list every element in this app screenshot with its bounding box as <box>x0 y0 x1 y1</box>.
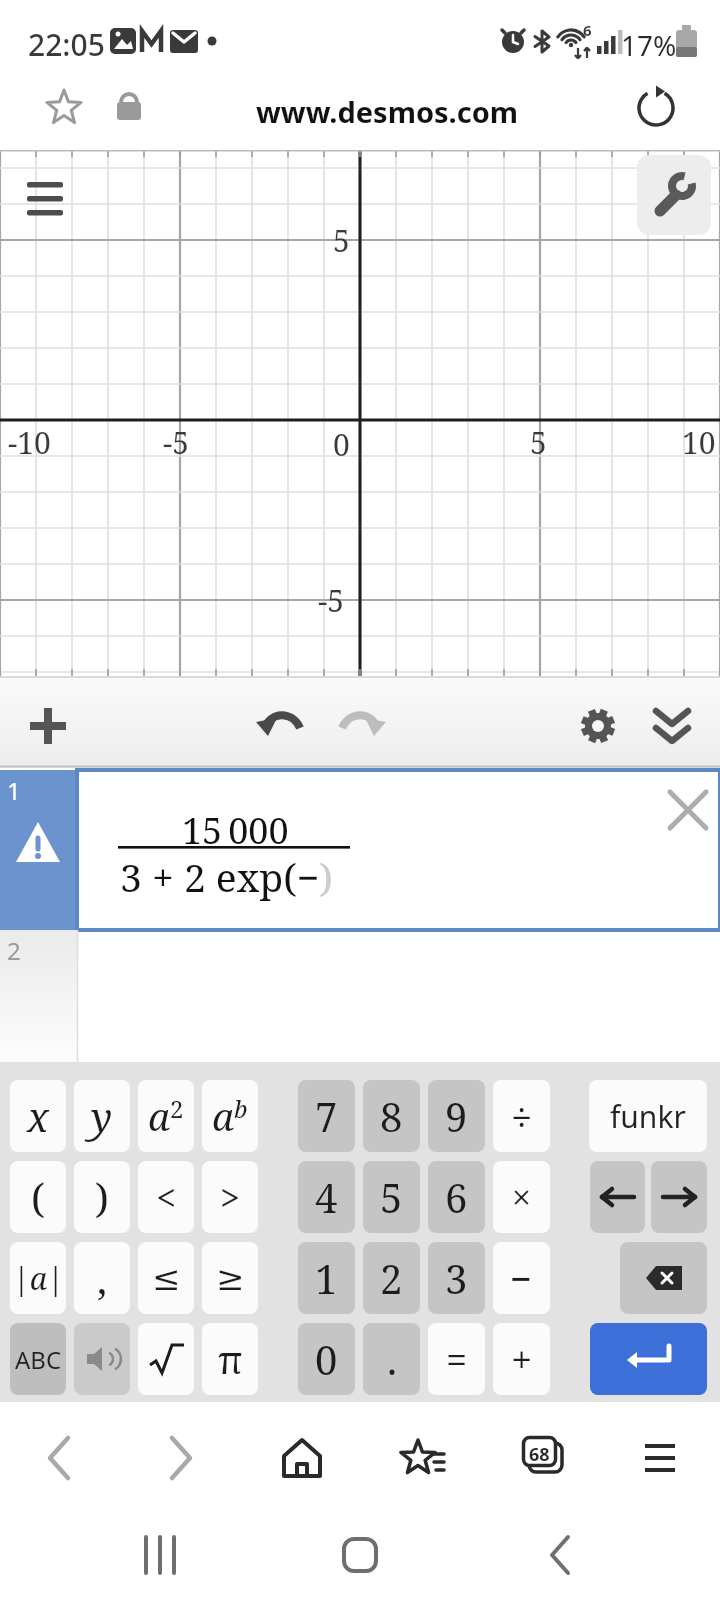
button[interactable]: 4 <box>298 1161 355 1233</box>
staticText: x <box>27 1089 49 1143</box>
staticText: 15 000 <box>182 806 289 855</box>
button[interactable]: . <box>363 1323 420 1395</box>
button[interactable]: 2 <box>363 1242 420 1314</box>
staticText: 2 <box>380 1251 403 1305</box>
staticText: 9 <box>445 1089 468 1143</box>
staticText: -5 <box>163 422 190 463</box>
staticText: ≤ <box>152 1258 181 1298</box>
button[interactable]: 8 <box>363 1080 420 1152</box>
button[interactable]: funkr <box>589 1080 707 1152</box>
button[interactable] <box>632 84 680 132</box>
button[interactable] <box>664 786 712 834</box>
button[interactable] <box>644 698 700 754</box>
button[interactable]: 7 <box>298 1080 355 1152</box>
staticText: > <box>220 1173 241 1222</box>
button[interactable]: ≥ <box>202 1242 258 1314</box>
staticText: 1 <box>315 1251 338 1305</box>
button[interactable] <box>0 770 77 930</box>
staticText: 1 <box>7 774 21 807</box>
button[interactable]: 5 <box>363 1161 420 1233</box>
staticText: www.desmos.com <box>256 92 519 131</box>
staticText: 3 <box>445 1251 468 1305</box>
button[interactable]: a2 <box>138 1080 194 1152</box>
button[interactable]: |a| <box>10 1242 66 1314</box>
button[interactable] <box>16 170 76 230</box>
button[interactable]: ) <box>74 1161 130 1233</box>
button[interactable] <box>0 930 77 1062</box>
button[interactable]: 1 <box>298 1242 355 1314</box>
staticText: ABC <box>15 1343 62 1376</box>
button[interactable] <box>590 1323 707 1395</box>
button[interactable]: < <box>138 1161 194 1233</box>
button[interactable] <box>630 1430 690 1486</box>
staticText: 22:05 <box>28 24 105 65</box>
staticText: × <box>512 1174 532 1220</box>
staticText: 3 + 2 exp(−) <box>120 850 333 903</box>
button[interactable] <box>150 1430 210 1486</box>
button[interactable] <box>570 698 626 754</box>
button[interactable] <box>20 698 76 754</box>
button[interactable]: 6 <box>428 1161 485 1233</box>
staticText: 68 <box>529 1442 550 1467</box>
staticText: -10 <box>8 422 51 463</box>
staticText: . <box>387 1332 397 1386</box>
button[interactable]: ÷ <box>493 1080 550 1152</box>
staticText: 4 <box>315 1170 338 1224</box>
button[interactable]: > <box>202 1161 258 1233</box>
button[interactable] <box>74 1323 130 1395</box>
button[interactable] <box>272 1430 332 1486</box>
button[interactable]: 68 <box>508 1430 568 1486</box>
button[interactable] <box>77 930 720 1062</box>
button[interactable]: + <box>493 1323 550 1395</box>
button[interactable] <box>130 1525 190 1585</box>
button[interactable] <box>77 770 720 930</box>
button[interactable]: , <box>74 1242 130 1314</box>
button[interactable]: 3 <box>428 1242 485 1314</box>
staticText: y <box>91 1089 113 1143</box>
staticText: π <box>218 1333 243 1385</box>
staticText: 6 <box>583 20 592 40</box>
button[interactable]: y <box>74 1080 130 1152</box>
button[interactable]: π <box>202 1323 258 1395</box>
staticText: 0 <box>333 424 350 465</box>
button[interactable] <box>651 1161 707 1233</box>
staticText: ÷ <box>511 1090 533 1142</box>
button[interactable]: 9 <box>428 1080 485 1152</box>
button[interactable]: × <box>493 1161 550 1233</box>
staticText: a2 <box>148 1090 184 1142</box>
staticText: < <box>156 1173 177 1222</box>
staticText: + <box>511 1333 533 1385</box>
button[interactable] <box>590 1161 645 1233</box>
staticText: 0 <box>315 1332 338 1386</box>
button[interactable] <box>252 698 312 754</box>
staticText: 7 <box>315 1089 338 1143</box>
button[interactable]: x <box>10 1080 66 1152</box>
staticText: = <box>446 1333 468 1385</box>
button[interactable] <box>530 1525 590 1585</box>
staticText: ) <box>95 1170 109 1224</box>
button[interactable]: ( <box>10 1161 66 1233</box>
staticText: |a| <box>13 1258 64 1299</box>
staticText: ( <box>31 1170 45 1224</box>
button[interactable] <box>138 1323 194 1395</box>
staticText: 6 <box>445 1170 468 1224</box>
button[interactable] <box>30 1430 90 1486</box>
button[interactable] <box>330 1525 390 1585</box>
button[interactable]: ABC <box>10 1323 66 1395</box>
staticText: 17% <box>621 26 677 64</box>
staticText: , <box>97 1251 107 1305</box>
button[interactable]: − <box>493 1242 550 1314</box>
button[interactable] <box>40 84 88 132</box>
button[interactable]: = <box>428 1323 485 1395</box>
staticText: 5 <box>380 1170 403 1224</box>
staticText: − <box>510 1252 533 1304</box>
staticText: ≥ <box>216 1258 245 1298</box>
button[interactable]: ab <box>202 1080 258 1152</box>
button[interactable]: 0 <box>298 1323 355 1395</box>
button[interactable] <box>637 155 711 235</box>
button[interactable] <box>620 1242 707 1314</box>
staticText: 8 <box>380 1089 403 1143</box>
button[interactable] <box>392 1430 452 1486</box>
button[interactable] <box>330 698 390 754</box>
button[interactable]: ≤ <box>138 1242 194 1314</box>
